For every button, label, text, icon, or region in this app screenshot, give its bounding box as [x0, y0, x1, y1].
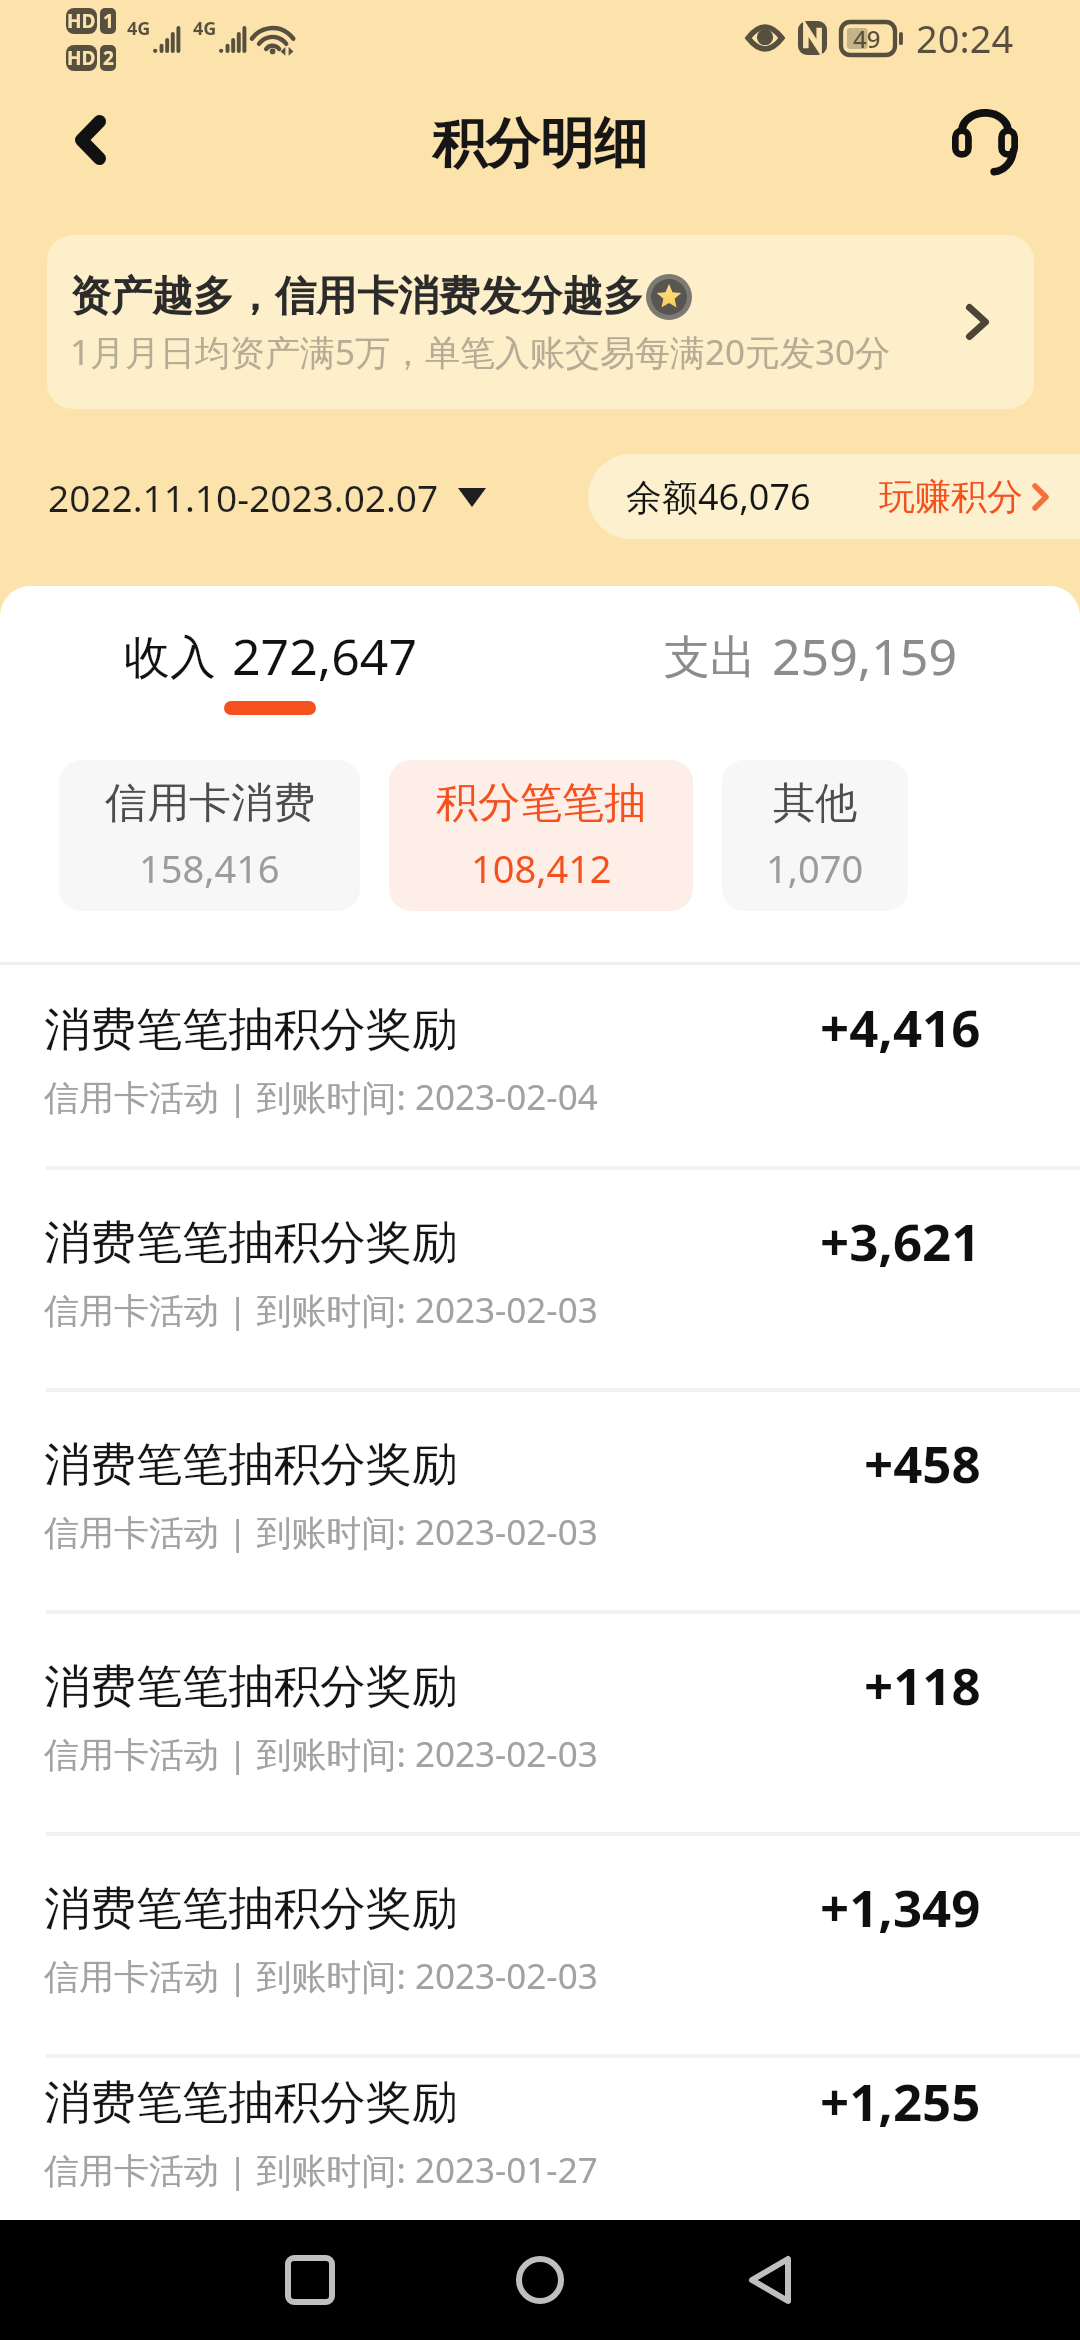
staticText: HD — [67, 45, 96, 71]
staticText: 收入 — [124, 629, 216, 687]
button[interactable]: 信用卡消费 — [59, 760, 360, 911]
staticText: +118 — [864, 1650, 981, 1719]
staticText: 259,159 — [772, 622, 957, 690]
staticText: 信用卡消费 — [105, 777, 315, 830]
staticText: 1 — [103, 8, 114, 34]
staticText: +4,416 — [820, 992, 981, 1061]
staticText: 信用卡活动 | 到账时间: 2023-02-03 — [44, 1286, 598, 1334]
staticText: 信用卡活动 | 到账时间: 2023-02-03 — [44, 1730, 598, 1778]
staticText: 信用卡活动 | 到账时间: 2023-02-03 — [44, 1508, 598, 1556]
button[interactable]: 积分笔笔抽 — [389, 760, 693, 911]
staticText: 支出 — [664, 629, 756, 687]
button[interactable]: 余额46,076 — [588, 454, 1080, 539]
button[interactable]: 收入 — [0, 619, 540, 715]
staticText: 49 — [853, 22, 881, 55]
staticText: 消费笔笔抽积分奖励 — [44, 1436, 458, 1494]
button[interactable]: Home — [498, 2238, 582, 2322]
staticText: 2022.11.10-2023.02.07 — [48, 472, 439, 522]
button[interactable]: Recents — [268, 2238, 352, 2322]
button[interactable]: Back — [48, 107, 132, 191]
button[interactable]: Back — [728, 2238, 812, 2322]
button[interactable]: 资产越多，信用卡消费发分越多 — [47, 235, 1034, 409]
staticText: 1,070 — [766, 842, 864, 894]
staticText: 资产越多，信用卡消费发分越多 — [70, 271, 644, 323]
staticText: 信用卡活动 | 到账时间: 2023-02-03 — [44, 1952, 598, 2000]
staticText: +458 — [864, 1428, 981, 1497]
staticText: 玩赚积分 — [879, 474, 1023, 519]
staticText: HD — [67, 8, 96, 34]
staticText: 消费笔笔抽积分奖励 — [44, 1658, 458, 1716]
button[interactable]: 消费笔笔抽积分奖励 — [0, 1836, 1080, 2054]
staticText: 信用卡活动 | 到账时间: 2023-01-27 — [44, 2146, 598, 2194]
staticText: 2 — [103, 45, 114, 71]
staticText: 积分笔笔抽 — [436, 777, 646, 830]
staticText: 消费笔笔抽积分奖励 — [44, 1214, 458, 1272]
button[interactable]: 消费笔笔抽积分奖励 — [0, 1614, 1080, 1832]
staticText: 108,412 — [471, 842, 612, 894]
staticText: 消费笔笔抽积分奖励 — [44, 1001, 458, 1059]
staticText: 4G — [193, 16, 217, 41]
button[interactable]: 消费笔笔抽积分奖励 — [0, 2058, 1080, 2220]
button[interactable]: 消费笔笔抽积分奖励 — [0, 1392, 1080, 1610]
button[interactable]: Customer service — [949, 107, 1033, 191]
button[interactable]: 消费笔笔抽积分奖励 — [0, 965, 1080, 1166]
staticText: 1月月日均资产满5万，单笔入账交易每满20元发30分 — [70, 328, 891, 376]
button[interactable]: 其他 — [722, 760, 908, 911]
staticText: 158,416 — [139, 842, 280, 894]
staticText: +1,349 — [820, 1872, 981, 1941]
staticText: 消费笔笔抽积分奖励 — [44, 1880, 458, 1938]
staticText: 信用卡活动 | 到账时间: 2023-02-04 — [44, 1073, 598, 1121]
staticText: 消费笔笔抽积分奖励 — [44, 2074, 458, 2132]
button[interactable]: 2022.11.10-2023.02.07 — [48, 472, 486, 522]
button[interactable]: 支出 — [540, 619, 1080, 715]
staticText: 其他 — [773, 777, 857, 830]
staticText: +1,255 — [820, 2066, 981, 2135]
staticText: 272,647 — [232, 622, 417, 690]
staticText: 余额46,076 — [626, 472, 811, 521]
staticText: 20:24 — [916, 12, 1014, 64]
button[interactable]: 消费笔笔抽积分奖励 — [0, 1170, 1080, 1388]
staticText: +3,621 — [820, 1206, 981, 1275]
staticText: 4G — [127, 16, 151, 41]
staticText: 积分明细 — [432, 110, 648, 178]
